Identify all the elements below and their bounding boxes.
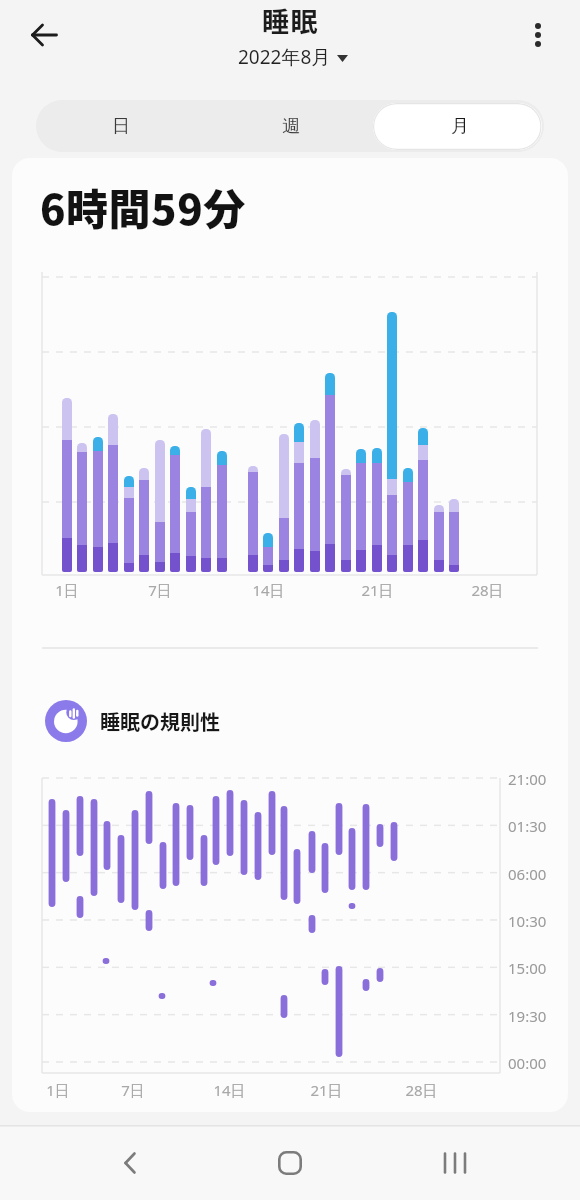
button[interactable] (70, 1125, 190, 1200)
staticText: 14日 (213, 1080, 246, 1100)
staticText: 28日 (405, 1080, 438, 1100)
button[interactable] (18, 10, 70, 60)
staticText: 日 (112, 115, 130, 138)
staticText: 10:30 (508, 911, 547, 931)
staticText: 7日 (148, 580, 172, 600)
staticText: 週 (282, 115, 300, 138)
staticText: 15:00 (508, 958, 547, 978)
staticText: 睡眠 (262, 1, 319, 40)
button[interactable] (518, 10, 558, 60)
button[interactable]: 月 (375, 100, 544, 152)
staticText: 1日 (46, 1080, 70, 1100)
button[interactable]: 週 (206, 100, 375, 152)
staticText: 7日 (121, 1080, 145, 1100)
button[interactable]: 日 (36, 100, 206, 152)
staticText: 01:30 (508, 816, 547, 836)
staticText: 06:00 (508, 864, 547, 884)
staticText: 睡眠の規則性 (100, 707, 220, 736)
staticText: 14日 (252, 580, 285, 600)
staticText: 21:00 (508, 769, 547, 789)
staticText: 00:00 (508, 1053, 547, 1073)
staticText: 6時間59分 (40, 176, 246, 237)
staticText: 19:30 (508, 1006, 547, 1026)
staticText: 21日 (310, 1080, 343, 1100)
button[interactable] (395, 1125, 515, 1200)
staticText: 2022年8月 (238, 44, 331, 70)
staticText: 月 (451, 115, 469, 138)
staticText: 21日 (361, 580, 394, 600)
button[interactable] (230, 1125, 350, 1200)
staticText: 1日 (55, 580, 79, 600)
staticText: 28日 (471, 580, 504, 600)
button[interactable]: 2022年8月 (238, 44, 342, 70)
